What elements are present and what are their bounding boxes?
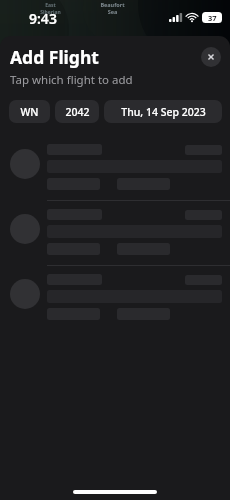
staticText: Thu, 14 Sep 2023	[121, 105, 206, 119]
staticText: WN	[20, 105, 39, 119]
button[interactable]: WN	[9, 100, 50, 123]
button[interactable]: 2042	[55, 100, 99, 123]
staticText: East Siberian	[40, 2, 61, 16]
staticText: Add Flight	[10, 45, 99, 69]
button[interactable]: Thu, 14 Sep 2023	[104, 100, 222, 123]
button[interactable]: Close	[201, 47, 221, 67]
staticText: Beaufort Sea	[100, 1, 125, 15]
button[interactable]	[0, 135, 230, 200]
staticText: 37	[208, 13, 217, 23]
button[interactable]	[0, 200, 230, 265]
staticText: 9:43	[29, 9, 57, 28]
staticText: Tap which flight to add	[10, 72, 133, 88]
button[interactable]	[0, 265, 230, 330]
staticText: 2042	[65, 105, 90, 119]
